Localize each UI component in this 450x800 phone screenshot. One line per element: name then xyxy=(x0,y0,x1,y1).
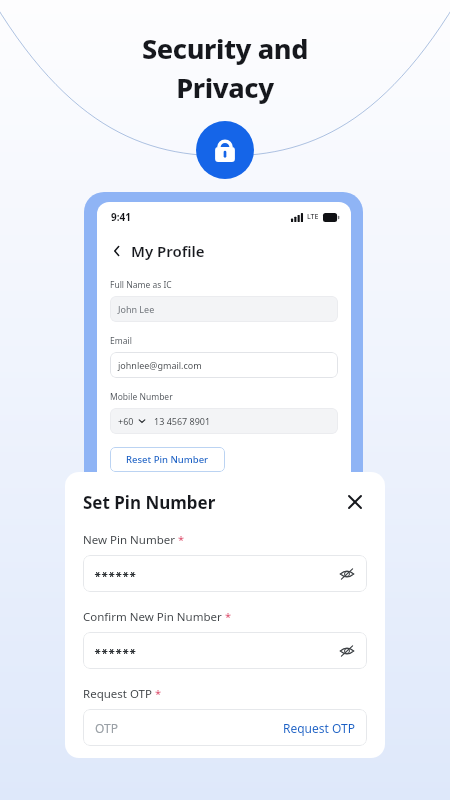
staticText: Full Name as IC xyxy=(110,279,172,291)
button[interactable]: +60 xyxy=(118,408,330,434)
button[interactable]: OTP xyxy=(95,709,355,746)
other: Security lock xyxy=(196,121,254,179)
staticText: Privacy xyxy=(176,69,274,106)
staticText: +60 xyxy=(118,415,134,427)
staticText: Security and xyxy=(142,30,308,67)
staticText: * xyxy=(225,609,232,624)
staticText: johnlee@gmail.com xyxy=(118,359,202,371)
button[interactable]: johnlee@gmail.com xyxy=(118,352,330,378)
button[interactable]: Back xyxy=(110,241,351,261)
button[interactable]: Toggle pin visibility xyxy=(338,642,356,660)
staticText: 13 4567 8901 xyxy=(154,415,211,427)
staticText: Request OTP xyxy=(83,686,152,702)
staticText: 9:41 xyxy=(111,210,131,224)
button[interactable]: Toggle pin visibility xyxy=(95,632,356,669)
staticText: Email xyxy=(110,335,132,347)
staticText: Confirm New Pin Number xyxy=(83,609,222,625)
staticText: New Pin Number xyxy=(83,532,175,548)
staticText: OTP xyxy=(95,720,118,736)
button[interactable]: John Lee xyxy=(118,296,330,322)
button[interactable]: Toggle pin visibility xyxy=(338,565,356,583)
button[interactable]: Request OTP xyxy=(283,720,355,736)
staticText: Reset Pin Number xyxy=(126,453,209,466)
staticText: * xyxy=(178,532,185,547)
staticText: LTE xyxy=(307,212,319,222)
staticText: Mobile Number xyxy=(110,391,173,403)
button[interactable]: Reset Pin Number xyxy=(110,447,225,472)
staticText: * xyxy=(155,686,162,701)
staticText: Request OTP xyxy=(283,720,355,736)
staticText: Set Pin Number xyxy=(83,491,216,514)
button[interactable]: Toggle pin visibility xyxy=(95,555,356,592)
staticText: John Lee xyxy=(118,303,155,315)
other: Back xyxy=(110,244,124,258)
staticText: My Profile xyxy=(131,241,205,261)
button[interactable]: Close xyxy=(343,490,367,514)
